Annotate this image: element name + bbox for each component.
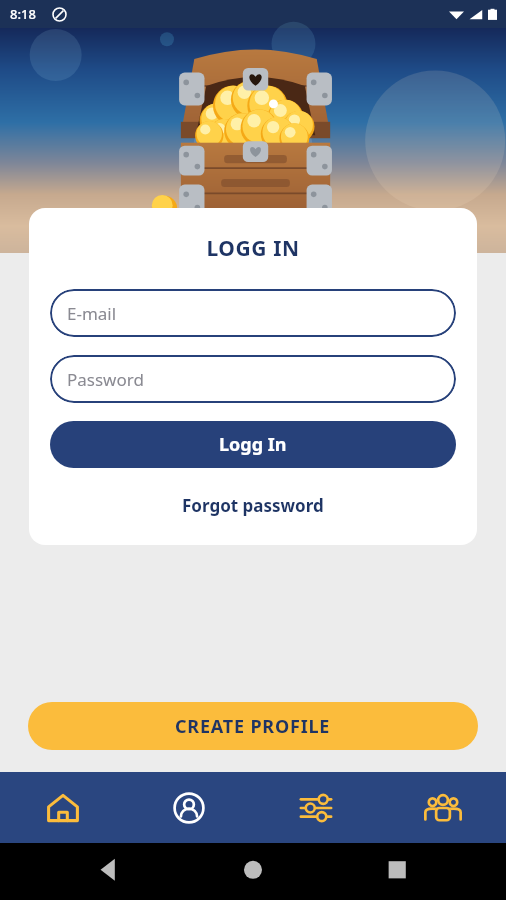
button[interactable]: Logg In bbox=[50, 421, 456, 468]
button[interactable]: Home bbox=[0, 772, 126, 843]
staticText: CREATE PROFILE bbox=[175, 714, 331, 739]
button[interactable]: Groups bbox=[379, 772, 506, 843]
staticText: LOGG IN bbox=[50, 234, 456, 263]
button[interactable]: E-mail bbox=[50, 289, 456, 337]
staticText: 8:18 bbox=[10, 5, 36, 23]
button[interactable]: Profile bbox=[126, 772, 252, 843]
button[interactable]: CREATE PROFILE bbox=[28, 702, 478, 750]
staticText: E-mail bbox=[67, 302, 117, 325]
staticText: Forgot password bbox=[182, 494, 324, 517]
staticText: Logg In bbox=[219, 432, 287, 457]
button[interactable]: Forgot password bbox=[50, 490, 456, 521]
button[interactable]: Settings bbox=[252, 772, 379, 843]
button[interactable]: Password bbox=[50, 355, 456, 403]
staticText: Password bbox=[67, 368, 144, 391]
